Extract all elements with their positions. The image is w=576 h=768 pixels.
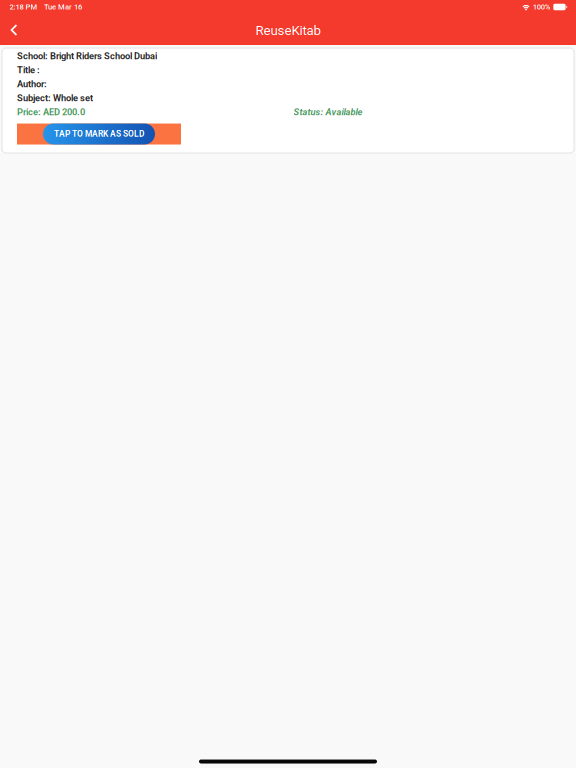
staticText: 2:18 PM bbox=[9, 2, 37, 11]
staticText: ReuseKitab bbox=[255, 23, 320, 38]
staticText: Status: Available bbox=[293, 106, 362, 117]
staticText: TAP TO MARK AS SOLD bbox=[54, 129, 144, 139]
staticText: Price: AED 200.0 bbox=[17, 106, 85, 117]
staticText: Author: bbox=[17, 78, 47, 89]
staticText: Subject: Whole set bbox=[17, 92, 93, 103]
staticText: School: Bright Riders School Dubai bbox=[17, 50, 157, 61]
staticText: Title : bbox=[17, 64, 40, 75]
button[interactable]: TAP TO MARK AS SOLD bbox=[17, 121, 181, 147]
staticText: Tue Mar 16 bbox=[44, 2, 82, 11]
button[interactable]: Back bbox=[3, 18, 25, 42]
staticText: 100% bbox=[533, 2, 551, 11]
